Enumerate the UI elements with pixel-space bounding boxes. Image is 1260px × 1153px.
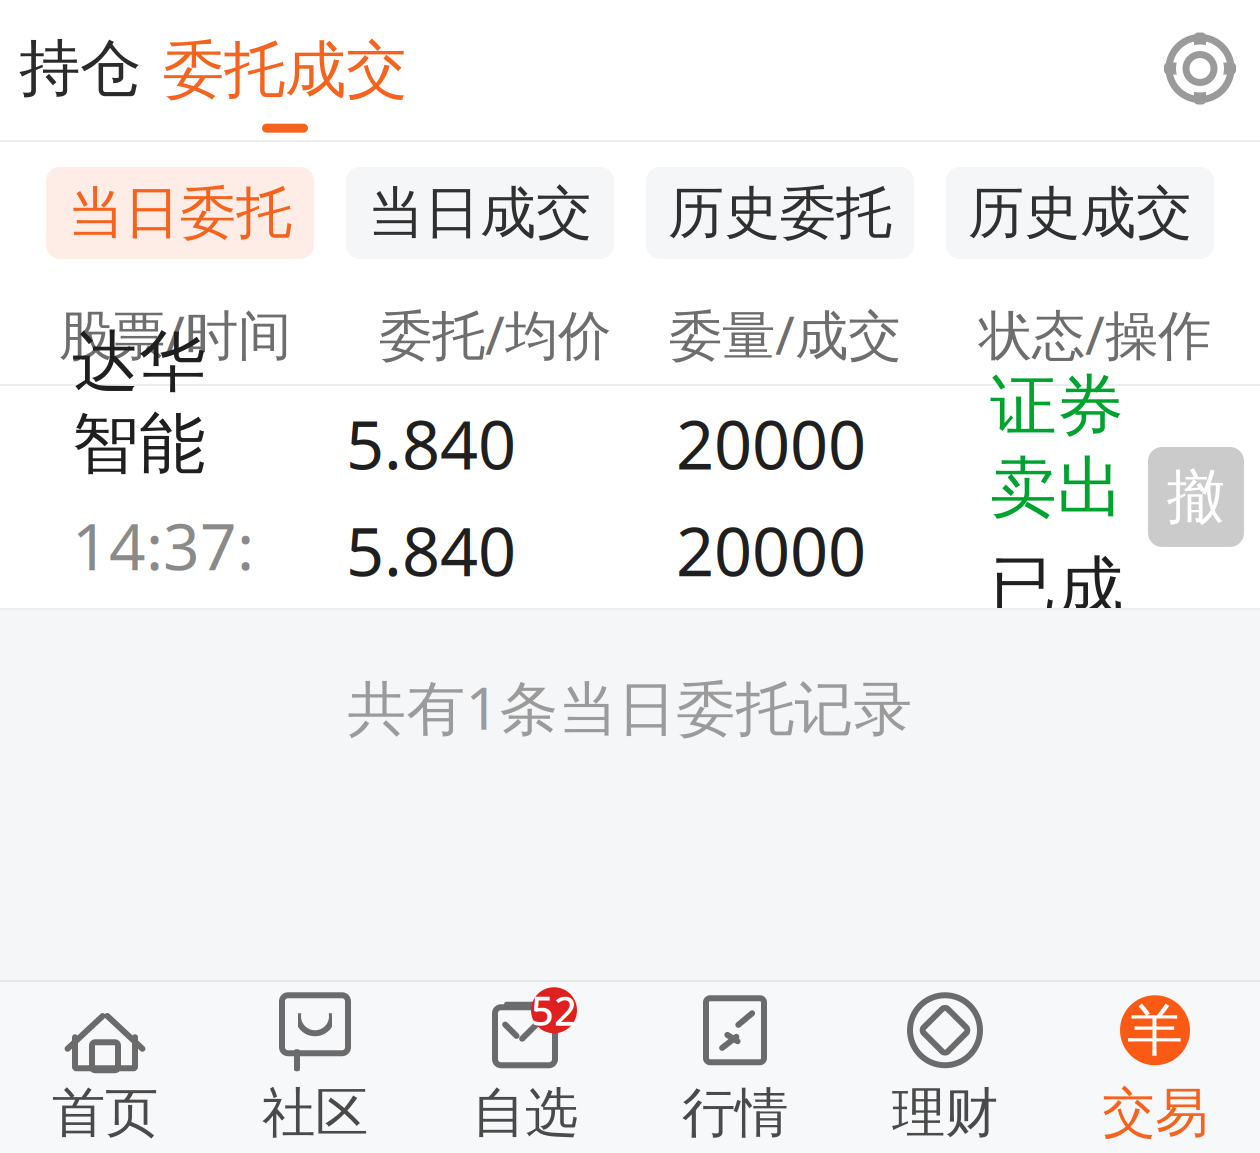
staticText: 自选 <box>472 1080 578 1146</box>
staticText: 20000 <box>676 399 866 488</box>
button[interactable]: 理财 <box>840 982 1050 1153</box>
staticText: 共有1条当日委托记录 <box>347 668 912 746</box>
staticText: 首页 <box>52 1080 158 1146</box>
staticText: 历史成交 <box>968 179 1192 247</box>
button[interactable]: 持仓 <box>0 0 160 140</box>
staticText: 52 <box>531 984 577 1037</box>
staticText: 证券卖出 <box>990 365 1124 529</box>
staticText: 委托/均价 <box>379 299 611 369</box>
button[interactable]: 撤 <box>1148 447 1244 547</box>
staticText: 撤 <box>1166 461 1225 533</box>
staticText: 行情 <box>682 1080 788 1146</box>
button[interactable]: 历史委托 <box>646 167 914 259</box>
staticText: 理财 <box>892 1080 998 1146</box>
button[interactable]: 羊 <box>1050 982 1260 1153</box>
button[interactable]: 社区 <box>210 982 420 1153</box>
button[interactable]: 行情 <box>630 982 840 1153</box>
button[interactable]: 当日委托 <box>46 167 314 259</box>
staticText: 状态/操作 <box>979 299 1211 369</box>
button[interactable]: 委托成交 <box>160 0 410 140</box>
staticText: 交易 <box>1102 1080 1208 1146</box>
staticText: 羊 <box>1127 996 1183 1065</box>
button[interactable]: 首页 <box>0 982 210 1153</box>
staticText: 历史委托 <box>668 179 892 247</box>
staticText: 已成 <box>990 547 1124 629</box>
staticText: 当日委托 <box>68 179 292 247</box>
button[interactable]: 历史成交 <box>946 167 1214 259</box>
staticText: 14:37:08 <box>72 503 254 673</box>
staticText: 5.840 <box>346 399 516 488</box>
staticText: 达华智能 <box>72 321 206 485</box>
staticText: 持仓 <box>19 31 141 106</box>
staticText: 委量/成交 <box>669 299 901 369</box>
staticText: 股票/时间 <box>59 299 291 369</box>
staticText: 20000 <box>676 506 866 594</box>
staticText: 当日成交 <box>368 179 592 247</box>
staticText: 5.840 <box>346 506 516 594</box>
staticText: 委托成交 <box>163 32 407 108</box>
button[interactable]: Settings <box>1140 0 1260 140</box>
button[interactable]: 52 <box>420 982 630 1153</box>
staticText: 社区 <box>262 1080 368 1146</box>
button[interactable]: 达华智能 <box>0 386 1260 608</box>
button[interactable]: 当日成交 <box>346 167 614 259</box>
